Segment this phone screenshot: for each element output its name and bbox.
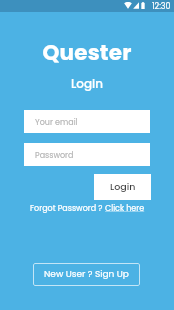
other: Battery: [141, 2, 145, 9]
staticText: 12:30: [152, 1, 171, 12]
staticText: Password: [35, 150, 74, 161]
other: Mobile signal: [133, 2, 139, 9]
staticText: Forgot Password ?: [30, 203, 105, 214]
staticText: Login: [0, 75, 174, 92]
staticText: Quester: [0, 37, 174, 67]
button[interactable]: Password: [24, 143, 150, 166]
button[interactable]: New User ? Sign Up: [33, 263, 140, 286]
button[interactable]: Your email: [24, 110, 150, 133]
button[interactable]: Forgot Password ?: [0, 203, 174, 214]
staticText: Login: [110, 180, 136, 193]
staticText: Your email: [35, 117, 78, 128]
staticText: New User ? Sign Up: [44, 268, 129, 281]
button[interactable]: Login: [94, 174, 151, 200]
staticText: Click here: [105, 203, 145, 214]
other: Wi-Fi: [124, 2, 132, 9]
